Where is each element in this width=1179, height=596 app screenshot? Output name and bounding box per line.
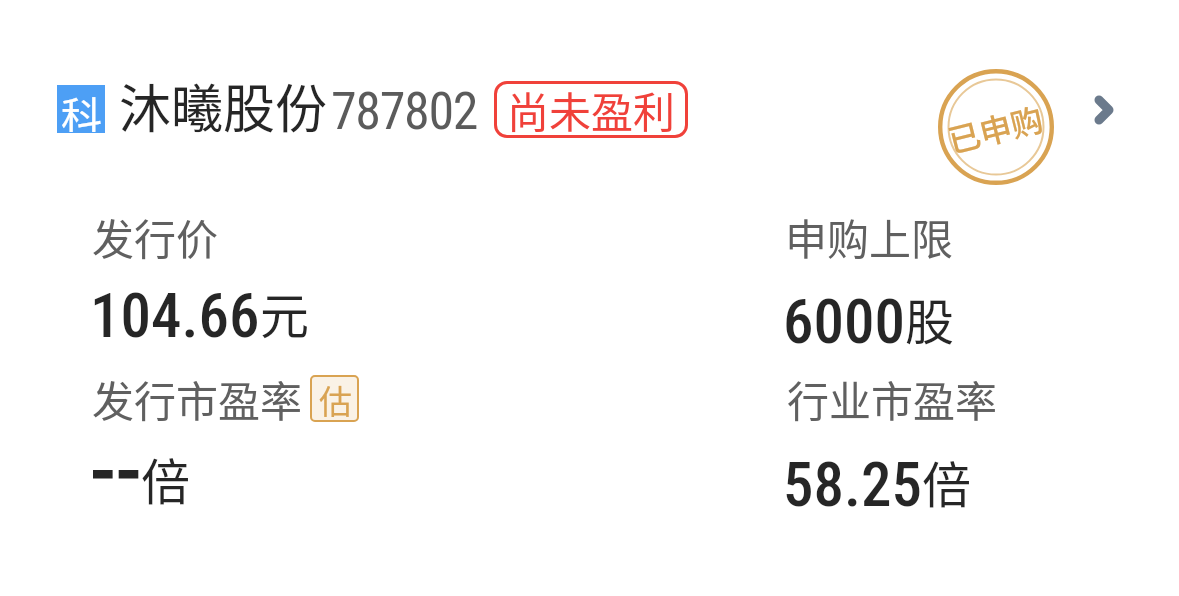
staticText: 尚未盈利 xyxy=(507,79,676,136)
staticText: 股 xyxy=(905,283,955,354)
staticText: 申购上限 xyxy=(785,206,954,267)
staticText: 已申购 xyxy=(943,94,1048,162)
button[interactable]: 估 xyxy=(310,375,359,422)
staticText: 行业市盈率 xyxy=(787,368,998,429)
button[interactable]: 查看详情 xyxy=(1078,84,1130,136)
staticText: 元 xyxy=(260,277,310,348)
staticText: 104.66 xyxy=(90,280,260,351)
staticText: 科 xyxy=(61,84,102,132)
button[interactable]: 科 xyxy=(0,0,1179,596)
staticText: 沐曦股份 xyxy=(119,68,328,143)
staticText: 6000 xyxy=(783,286,905,357)
staticText: 58.25 xyxy=(783,449,922,520)
button[interactable]: 尚未盈利 xyxy=(494,81,688,138)
staticText: 估 xyxy=(319,376,352,423)
staticText: 倍 xyxy=(141,443,191,514)
staticText: 787802 xyxy=(331,81,478,142)
staticText: 发行市盈率 xyxy=(92,368,303,429)
staticText: 发行价 xyxy=(92,206,219,267)
staticText: 倍 xyxy=(922,446,972,517)
button[interactable]: 已申购 xyxy=(938,69,1054,185)
